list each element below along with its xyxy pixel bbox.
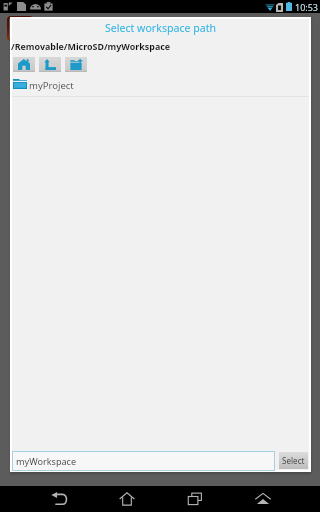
button[interactable]: Back <box>50 486 67 512</box>
staticText: myProject <box>29 79 74 92</box>
button[interactable]: myWorkspace <box>12 451 275 471</box>
button[interactable]: Recent apps <box>186 486 203 512</box>
staticText: myWorkspace <box>16 455 77 467</box>
staticText: Select <box>282 455 305 466</box>
staticText: Select workspace path <box>12 21 309 35</box>
staticText: 10:53 <box>295 1 319 13</box>
button[interactable]: Expand <box>254 486 271 512</box>
button[interactable]: myProject <box>12 77 309 96</box>
button[interactable]: New folder <box>65 57 87 72</box>
button[interactable]: Home <box>118 486 135 512</box>
button[interactable]: Up one level <box>39 57 61 72</box>
button[interactable]: Home <box>13 57 35 72</box>
button[interactable]: Select <box>279 452 308 469</box>
staticText: /Removable/MicroSD/myWorkspace <box>11 40 171 52</box>
